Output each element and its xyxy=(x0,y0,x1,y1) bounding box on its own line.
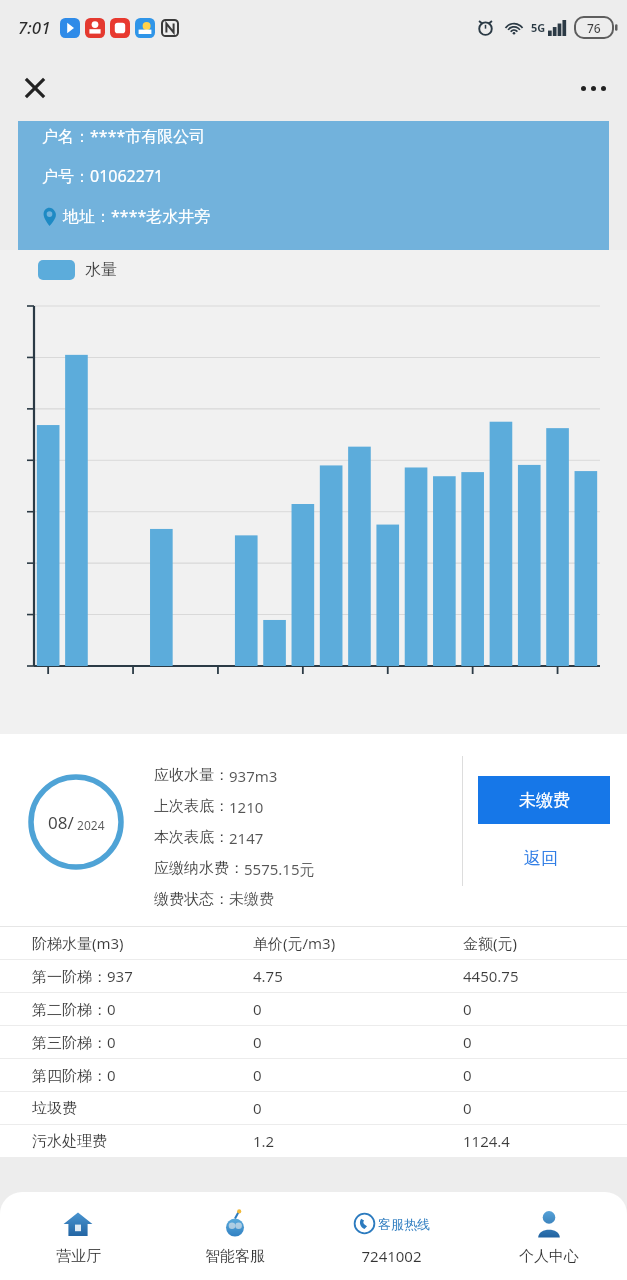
button[interactable]: 返回 xyxy=(524,848,558,869)
button[interactable]: 营业厅 xyxy=(0,1192,156,1280)
staticText: 第三阶梯：0 xyxy=(32,1032,116,1052)
staticText: 0 xyxy=(463,1098,472,1118)
button[interactable]: 污水处理费 xyxy=(0,1125,627,1157)
staticText: 污水处理费 xyxy=(32,1132,107,1151)
staticText: 4450.75 xyxy=(463,966,519,986)
staticText: 应缴纳水费： xyxy=(154,859,244,878)
button[interactable]: 第一阶梯：937 xyxy=(0,960,627,992)
staticText: 5575.15元 xyxy=(244,859,315,879)
button[interactable]: 阶梯水量(m3) xyxy=(0,927,627,959)
staticText: 返回 xyxy=(524,848,558,869)
staticText: 上次表底： xyxy=(154,797,229,816)
staticText: 0 xyxy=(253,1065,262,1085)
button[interactable]: 智能客服 xyxy=(156,1192,313,1280)
button[interactable]: 第二阶梯：0 xyxy=(0,993,627,1025)
staticText: 户名：****市有限公司 xyxy=(42,125,206,147)
staticText: 阶梯水量(m3) xyxy=(32,933,124,953)
staticText: 0 xyxy=(463,1032,472,1052)
button[interactable]: 客服热线 xyxy=(313,1192,470,1280)
staticText: 第一阶梯：937 xyxy=(32,966,133,986)
staticText: 户号：01062271 xyxy=(42,165,164,187)
staticText: 0 xyxy=(463,999,472,1019)
staticText: 0 xyxy=(253,1098,262,1118)
staticText: 未缴费 xyxy=(229,890,274,909)
staticText: 个人中心 xyxy=(519,1247,579,1266)
staticText: 0 xyxy=(253,999,262,1019)
staticText: 0 xyxy=(463,1065,472,1085)
staticText: 4.75 xyxy=(253,966,283,986)
staticText: 未缴费 xyxy=(519,790,570,811)
button[interactable]: 第三阶梯：0 xyxy=(0,1026,627,1058)
staticText: 2024 xyxy=(74,817,105,833)
staticText: 缴费状态： xyxy=(154,890,229,909)
button[interactable]: 未缴费 xyxy=(478,776,610,824)
staticText: 5G xyxy=(531,20,546,35)
staticText: 单价(元/m3) xyxy=(253,933,336,953)
staticText: 1210 xyxy=(229,797,264,817)
staticText: 水量 xyxy=(85,260,117,280)
staticText: 金额(元) xyxy=(463,933,518,953)
staticText: 08/ xyxy=(48,811,74,834)
staticText: 76 xyxy=(587,20,601,36)
button[interactable]: 个人中心 xyxy=(470,1192,627,1280)
staticText: 0 xyxy=(253,1032,262,1052)
staticText: 1.2 xyxy=(253,1131,275,1151)
staticText: 垃圾费 xyxy=(32,1099,77,1118)
staticText: 第四阶梯：0 xyxy=(32,1065,116,1085)
button[interactable]: 户名：****市有限公司 xyxy=(18,121,609,250)
button[interactable]: 垃圾费 xyxy=(0,1092,627,1124)
button[interactable]: 第四阶梯：0 xyxy=(0,1059,627,1091)
staticText: 应收水量： xyxy=(154,766,229,785)
staticText: 7:01 xyxy=(18,16,51,39)
staticText: 智能客服 xyxy=(205,1247,265,1266)
staticText: 第二阶梯：0 xyxy=(32,999,116,1019)
button[interactable]: More options xyxy=(571,66,615,110)
staticText: 2147 xyxy=(229,828,264,848)
staticText: 客服热线 xyxy=(378,1216,430,1232)
staticText: 1124.4 xyxy=(463,1131,510,1151)
button[interactable]: Close xyxy=(14,67,56,109)
staticText: 营业厅 xyxy=(56,1247,101,1266)
staticText: 本次表底： xyxy=(154,828,229,847)
staticText: 937m3 xyxy=(229,766,278,786)
staticText: 7241002 xyxy=(361,1246,422,1266)
staticText: 地址：****老水井旁 xyxy=(63,205,211,227)
